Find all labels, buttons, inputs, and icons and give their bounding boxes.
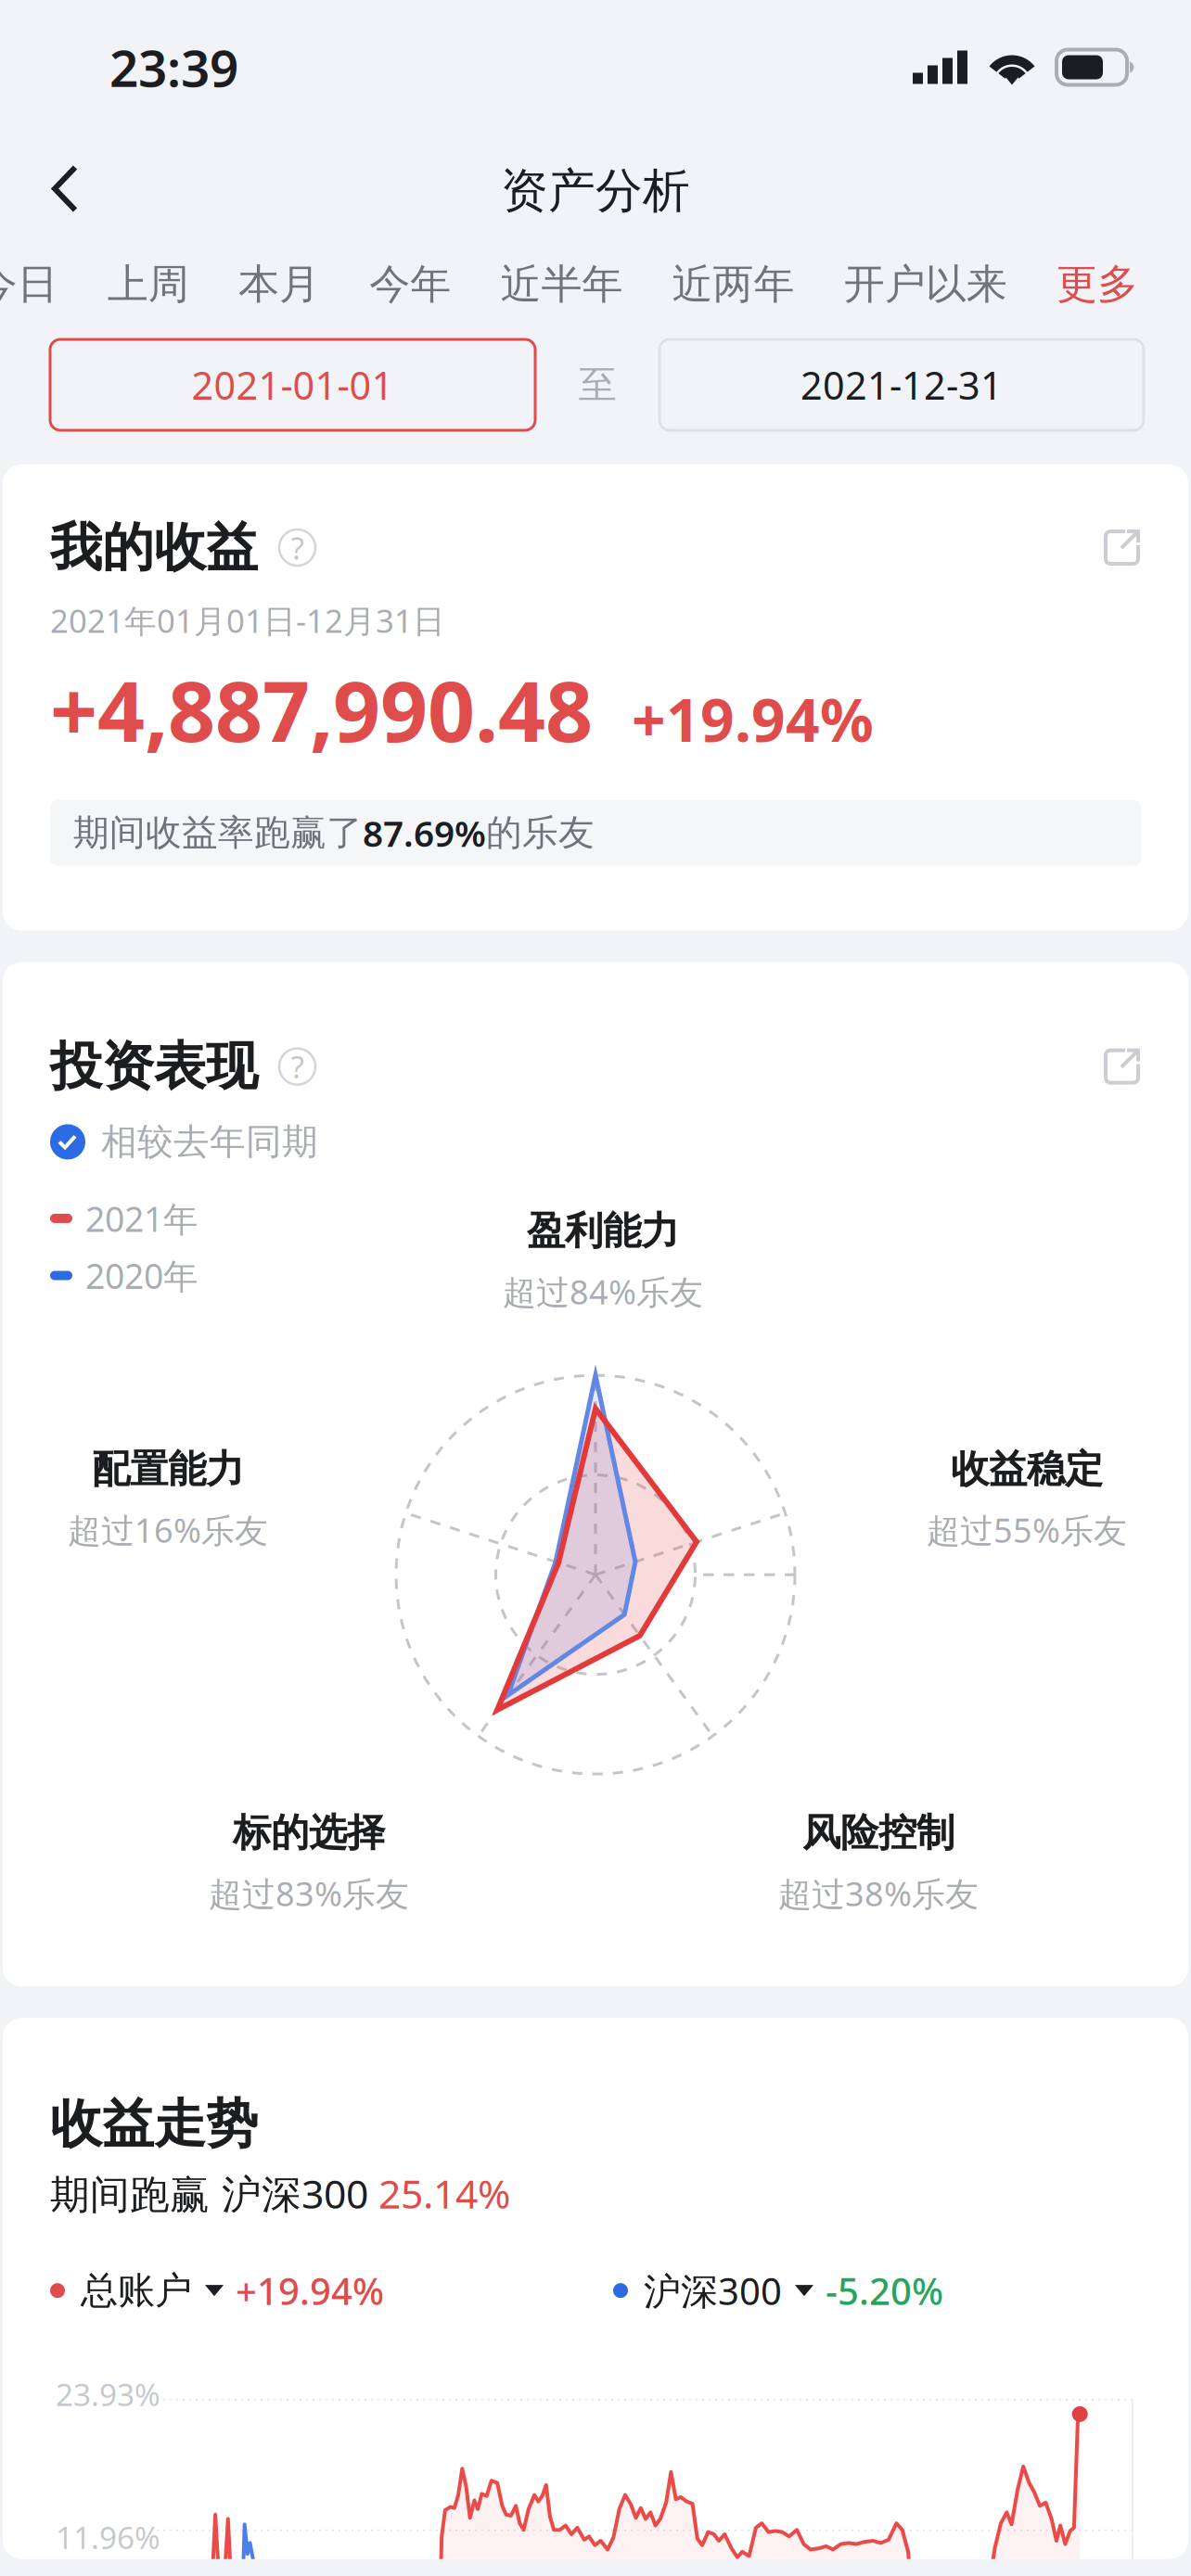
staticText: 配置能力 [92,1446,244,1493]
staticText: 更多 [1057,259,1138,309]
staticText: 资产分析 [501,162,690,220]
staticText: +19.94% [236,2266,384,2315]
staticText: 总账户 [81,2268,192,2313]
staticText: 今年 [369,259,451,309]
button[interactable]: 展开 [1103,529,1141,567]
staticText: 今日 [0,259,58,309]
button[interactable]: 今日 [0,259,83,309]
staticText: -5.20% [826,2266,943,2315]
staticText: 盈利能力 [527,1208,679,1255]
button[interactable]: 近半年 [476,259,647,309]
button[interactable]: 本月 [214,259,345,309]
button[interactable]: 上周 [83,259,214,309]
staticText: ? [291,527,304,568]
staticText: 标的选择 [233,1809,385,1856]
staticText: 2021-01-01 [192,359,394,410]
staticText: 超过84%乐友 [503,1269,703,1314]
staticText: 近两年 [672,259,795,309]
staticText: 11.96% [56,2517,160,2558]
button[interactable]: 2021-01-01 [50,339,535,430]
staticText: +19.94% [632,679,874,758]
staticText: 2020年 [85,1252,198,1298]
staticText: 收益走势 [50,2092,258,2156]
staticText: 沪深300 [644,2266,782,2315]
staticText: 近半年 [500,259,623,309]
staticText: 投资表现 [50,1035,258,1098]
staticText: 的乐友 [486,811,595,855]
staticText: 超过83%乐友 [209,1871,409,1915]
staticText: 23:39 [109,34,238,101]
staticText: 2021年01月01日-12月31日 [50,599,445,642]
staticText: 25.14% [378,2167,510,2220]
staticText: 期间跑赢 沪深300 [50,2167,378,2220]
staticText: 超过55%乐友 [927,1508,1127,1552]
staticText: 收益稳定 [951,1446,1103,1493]
staticText: 本月 [238,259,320,309]
staticText: 超过16%乐友 [68,1508,268,1552]
button[interactable]: 近两年 [647,259,819,309]
button[interactable]: 今年 [345,259,476,309]
staticText: +4,887,990.48 [50,655,593,765]
button[interactable]: 展开 [1103,1048,1141,1086]
staticText: 相较去年同期 [101,1120,318,1164]
staticText: 期间收益率跑赢了 [73,811,363,855]
staticText: 87.69% [363,809,486,857]
staticText: 23.93% [56,2374,160,2415]
staticText: 超过38%乐友 [778,1871,979,1915]
staticText: 2021年 [85,1195,198,1241]
button[interactable]: 2021-12-31 [660,339,1144,430]
staticText: 2021-12-31 [800,359,1003,410]
button[interactable]: 开户以来 [819,259,1032,309]
button[interactable]: 更多 [1032,259,1163,309]
staticText: 上周 [107,259,189,309]
staticText: 至 [578,361,616,408]
button[interactable]: 返回 [0,152,115,230]
staticText: 开户以来 [844,259,1007,309]
staticText: 我的收益 [50,516,258,579]
staticText: 风险控制 [802,1809,954,1856]
staticText: ? [291,1046,304,1087]
